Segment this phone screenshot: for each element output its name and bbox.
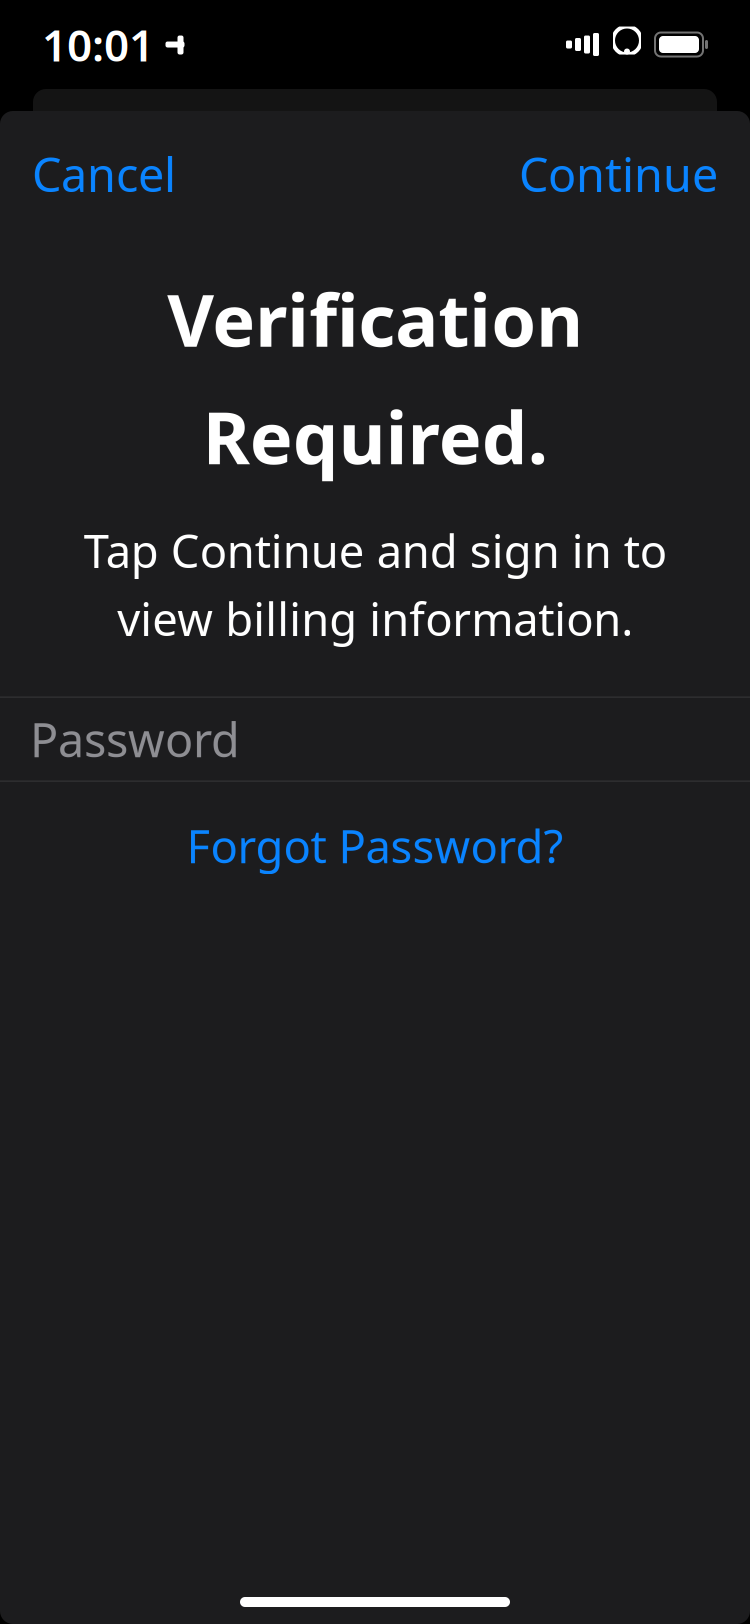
- staticText: Forgot Password?: [186, 816, 563, 876]
- staticText: Continue: [519, 143, 718, 205]
- button[interactable]: Password: [0, 698, 750, 781]
- staticText: Tap Continue and sign in to view billing…: [83, 520, 666, 649]
- staticText: 10:01: [42, 15, 154, 74]
- button[interactable]: Forgot Password?: [146, 804, 603, 888]
- staticText: Password: [30, 708, 240, 770]
- staticText: Cancel: [32, 143, 176, 205]
- button[interactable]: Cancel: [0, 129, 208, 219]
- staticText: Verification Required.: [167, 271, 583, 484]
- button[interactable]: Continue: [487, 129, 750, 219]
